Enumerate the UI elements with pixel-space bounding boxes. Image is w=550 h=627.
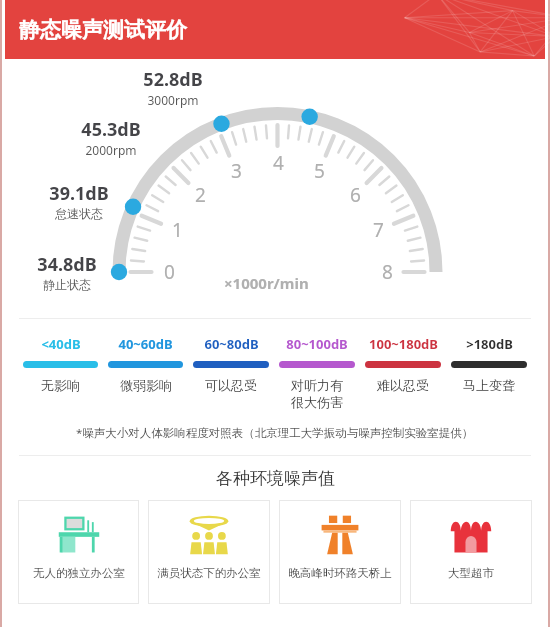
staticText: 4 [273,150,284,176]
staticText: 100~180dB [369,335,438,353]
staticText: 晚高峰时环路天桥上 [288,566,392,580]
staticText: 6 [350,182,361,208]
button[interactable]: 晚高峰时环路天桥上 [279,500,401,604]
staticText: 对听力有 很大伤害 [291,377,343,411]
staticText: *噪声大小对人体影响程度对照表（北京理工大学振动与噪声控制实验室提供） [76,425,474,441]
staticText: 无人的独立办公室 [33,566,125,580]
staticText: ×1000r/min [224,273,309,293]
staticText: 3 [231,158,242,184]
staticText: 40~60dB [118,335,173,353]
staticText: 5 [314,158,325,184]
staticText: 静止状态 [43,277,91,292]
button[interactable]: 大型超市 [410,500,532,604]
staticText: 52.8dB [143,67,203,92]
other: 大型超市 [448,512,494,558]
button[interactable]: 100~180dB [361,335,445,393]
staticText: 8 [382,259,393,285]
button[interactable]: <40dB [19,335,102,393]
staticText: 2 [195,182,206,208]
staticText: 各种环境噪声值 [216,468,335,489]
button[interactable]: 80~100dB [275,335,359,411]
staticText: 难以忍受 [377,377,429,393]
staticText: 无影响 [41,377,80,393]
staticText: 0 [164,259,175,285]
staticText: 大型超市 [448,566,494,580]
staticText: 2000rpm [85,142,137,158]
staticText: <40dB [41,335,81,353]
button[interactable]: 40~60dB [104,335,187,393]
button[interactable]: 60~80dB [189,335,273,393]
staticText: 45.3dB [81,117,141,142]
staticText: 静态噪声测试评价 [19,17,187,43]
staticText: 7 [373,217,384,243]
staticText: 34.8dB [37,252,97,277]
staticText: 1 [172,217,183,243]
staticText: 怠速状态 [55,206,103,221]
staticText: >180dB [466,335,513,353]
button[interactable]: 无人的独立办公室 [18,500,139,604]
staticText: 马上变聋 [463,377,515,393]
staticText: 60~80dB [204,335,259,353]
staticText: 39.1dB [49,181,109,206]
button[interactable]: 满员状态下的办公室 [148,500,270,604]
other: 晚高峰时环路天桥上 [317,512,363,558]
other: 无人的独立办公室 [56,512,102,558]
staticText: 微弱影响 [120,377,172,393]
staticText: 可以忍受 [205,377,257,393]
staticText: 80~100dB [286,335,348,353]
staticText: 3000rpm [147,92,199,108]
other: 满员状态下的办公室 [186,512,232,558]
button[interactable]: >180dB [447,335,531,393]
staticText: 满员状态下的办公室 [157,566,261,580]
